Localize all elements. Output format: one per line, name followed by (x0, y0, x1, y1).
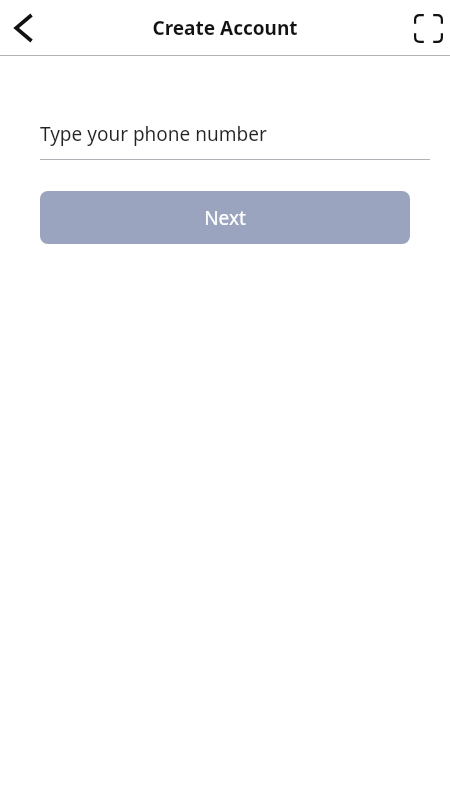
button[interactable]: Next (40, 191, 410, 244)
button[interactable]: Back (0, 4, 48, 52)
button[interactable]: Type your phone number (40, 121, 430, 160)
staticText: Create Account (152, 15, 298, 41)
staticText: Type your phone number (40, 121, 267, 147)
button[interactable]: Scan code (404, 4, 450, 52)
staticText: Next (204, 205, 246, 231)
